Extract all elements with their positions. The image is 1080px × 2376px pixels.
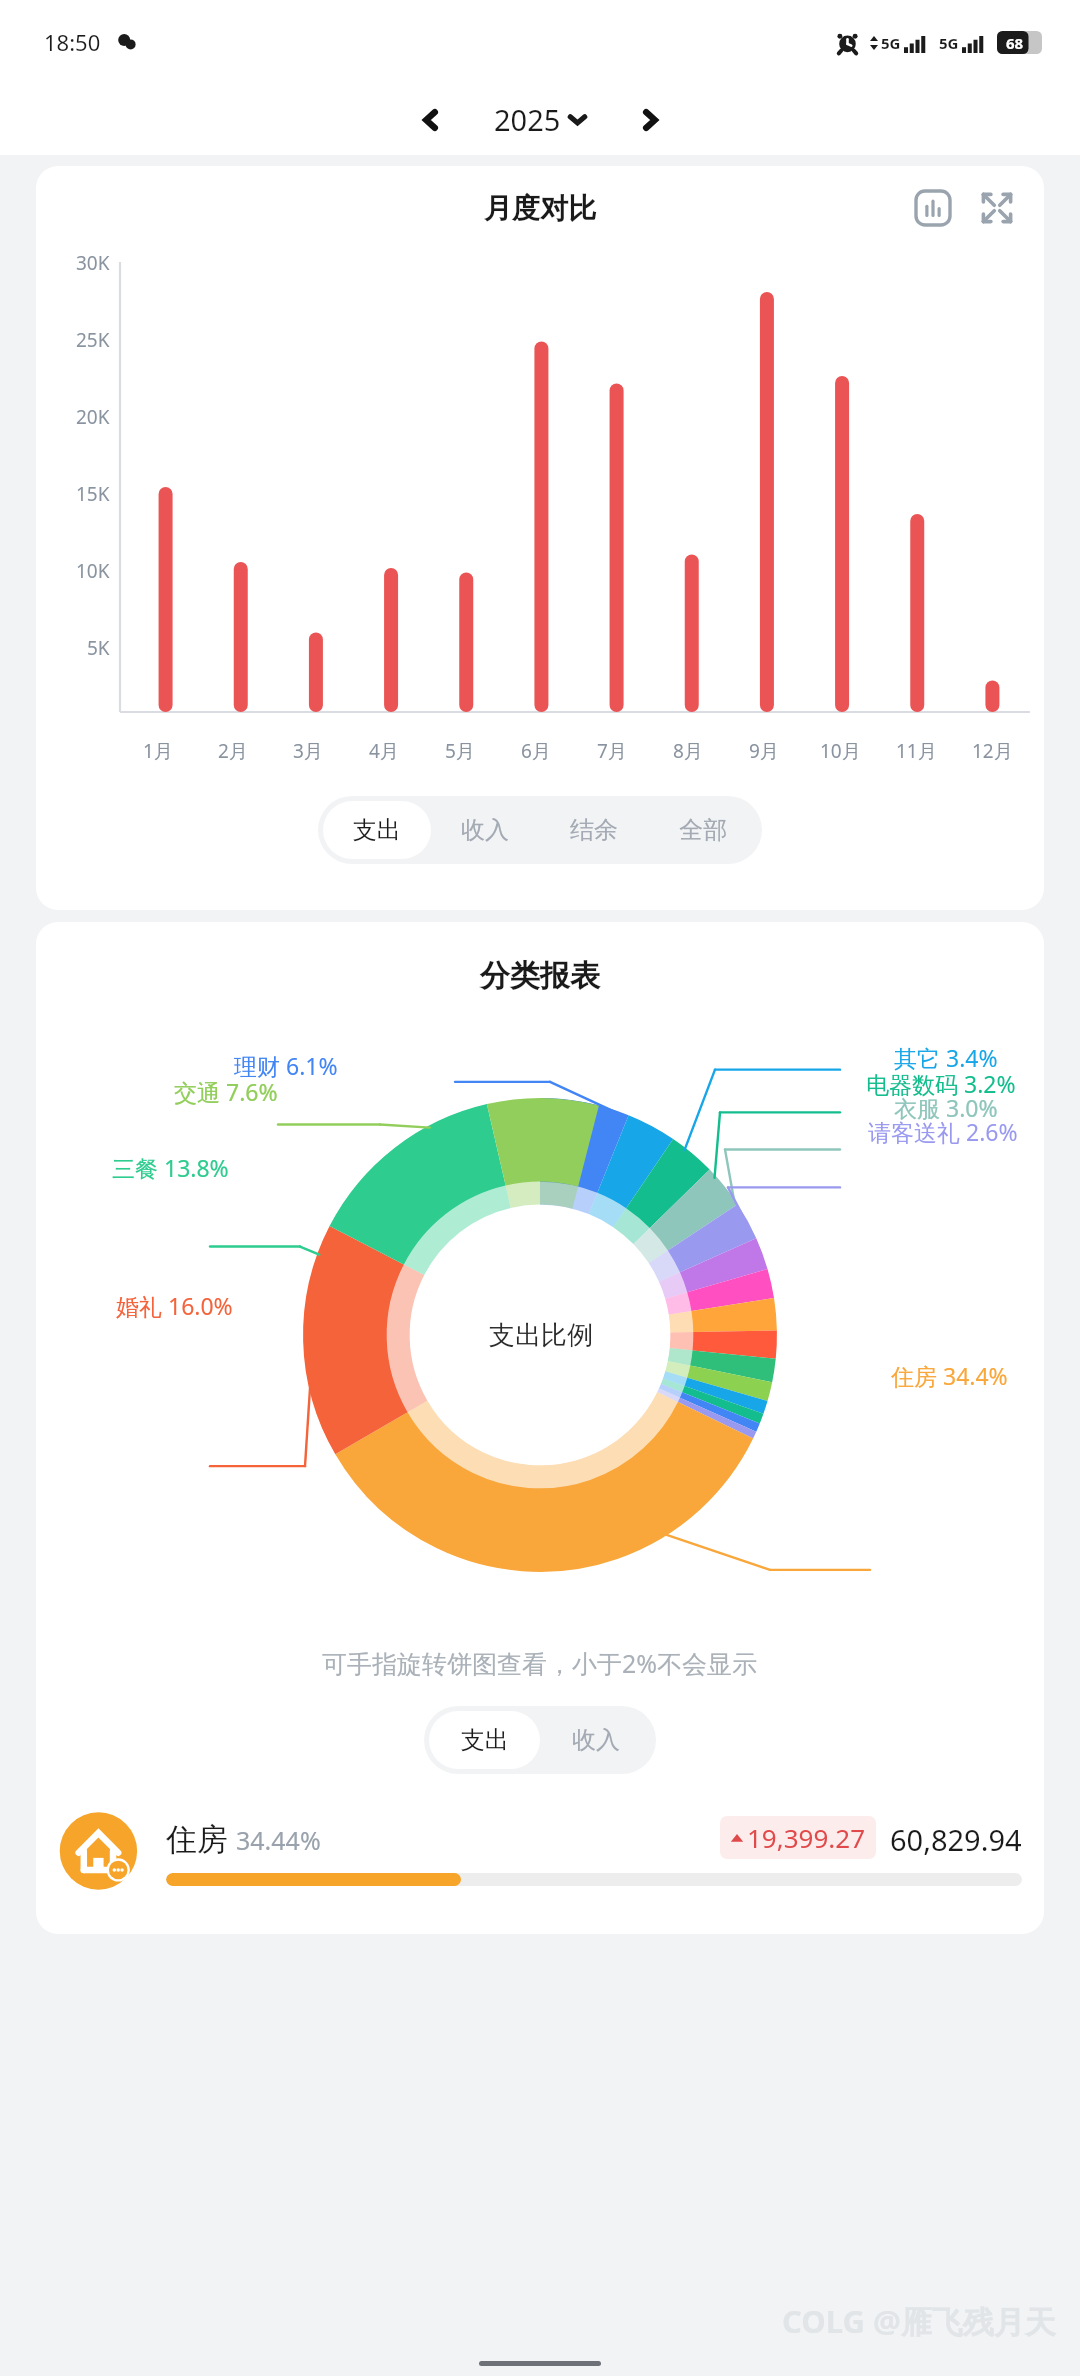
staticText: 衣服 3.0% [894, 1092, 998, 1123]
staticText: 收入 [572, 1725, 620, 1755]
staticText: 18:50 [44, 27, 101, 57]
staticText: 请客送礼 2.6% [868, 1116, 1018, 1147]
button[interactable]: 结余 [539, 801, 648, 859]
staticText: 20K [76, 404, 110, 430]
staticText: 其它 3.4% [894, 1042, 998, 1073]
button[interactable]: 住房 [36, 1808, 1044, 1894]
staticText: 11月 [896, 738, 937, 764]
staticText: 10K [76, 558, 110, 584]
staticText: 支出比例 [489, 1319, 593, 1352]
staticText: 30K [76, 250, 110, 276]
staticText: 收入 [461, 815, 509, 845]
staticText: 5G [881, 33, 901, 53]
staticText: 15K [76, 481, 110, 507]
button[interactable]: 收入 [431, 801, 539, 859]
button[interactable]: Previous year [404, 93, 458, 147]
staticText: 住房 34.4% [891, 1360, 1008, 1391]
staticText: 三餐 13.8% [112, 1152, 229, 1183]
staticText: 6月 [521, 738, 551, 764]
staticText: 住房 [166, 1820, 228, 1859]
staticText: 交通 7.6% [174, 1076, 278, 1107]
staticText: 60,829.94 [890, 1820, 1022, 1859]
button[interactable]: Next year [623, 93, 677, 147]
staticText: 8月 [673, 738, 703, 764]
button[interactable]: Chart type [910, 185, 956, 231]
staticText: 月度对比 [484, 191, 596, 226]
staticText: 10月 [820, 738, 861, 764]
staticText: 支出 [353, 815, 401, 845]
staticText: 5G [939, 33, 959, 53]
staticText: 可手指旋转饼图查看，小于2%不会显示 [322, 1646, 758, 1680]
staticText: 34.44% [236, 1823, 321, 1857]
staticText: 3月 [293, 738, 323, 764]
staticText: 7月 [597, 738, 627, 764]
staticText: 68 [1006, 33, 1024, 53]
staticText: 19,399.27 [747, 1820, 866, 1855]
button[interactable]: 2025 [488, 96, 593, 143]
staticText: 结余 [570, 815, 618, 845]
staticText: 4月 [369, 738, 399, 764]
staticText: 2月 [218, 738, 248, 764]
staticText: COLG @雁飞残月天 [782, 2300, 1056, 2342]
staticText: 分类报表 [480, 957, 600, 995]
staticText: 1月 [143, 738, 173, 764]
staticText: 25K [76, 327, 110, 353]
staticText: 理财 6.1% [234, 1050, 338, 1081]
staticText: 婚礼 16.0% [116, 1290, 233, 1321]
staticText: 12月 [972, 738, 1013, 764]
staticText: 全部 [679, 815, 727, 845]
button[interactable]: 全部 [648, 801, 757, 859]
button[interactable]: 收入 [540, 1711, 651, 1769]
staticText: 2025 [494, 100, 561, 139]
button[interactable]: 支出 [323, 801, 431, 859]
staticText: 电器数码 3.2% [866, 1068, 1016, 1099]
button[interactable]: 支出 [429, 1711, 540, 1769]
staticText: 5K [87, 635, 110, 661]
staticText: 支出 [461, 1725, 509, 1755]
staticText: 5月 [445, 738, 475, 764]
staticText: 9月 [749, 738, 779, 764]
button[interactable]: Fullscreen [974, 185, 1020, 231]
